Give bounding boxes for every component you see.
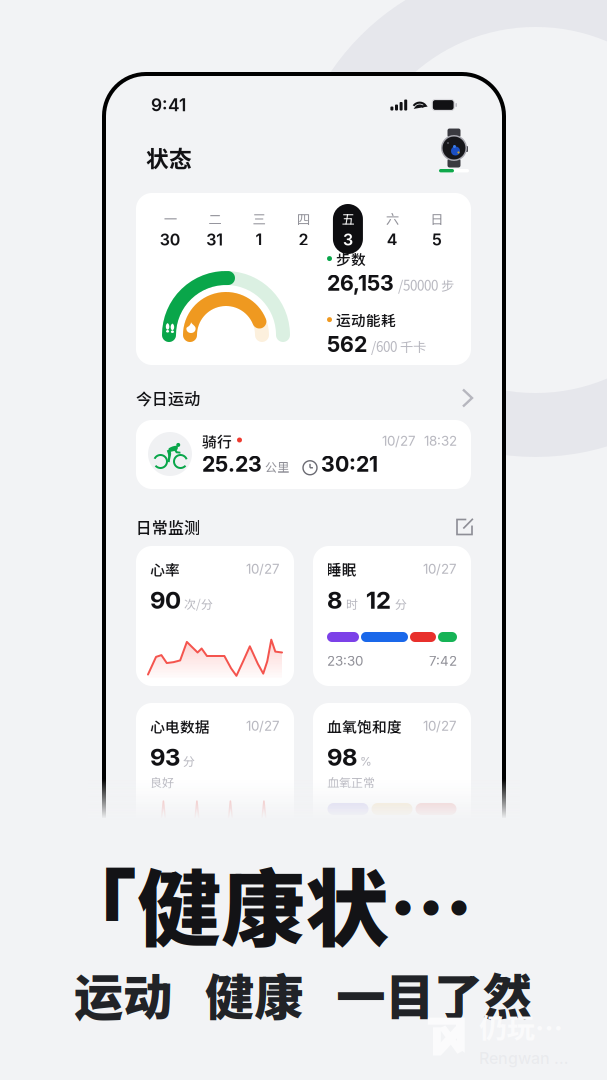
staticText: 30:21 — [321, 451, 378, 477]
button[interactable]: 睡眠 — [313, 546, 471, 686]
staticText: 「健康状态」 — [53, 842, 553, 938]
staticText: 10/27 — [246, 718, 280, 734]
staticText: /600 千卡 — [371, 336, 426, 356]
staticText: 4 — [387, 230, 398, 249]
staticText: 8 — [327, 585, 342, 614]
staticText: 状态 — [146, 141, 192, 173]
staticText: 心率 — [150, 558, 180, 580]
staticText: 93 — [150, 742, 180, 771]
button[interactable]: 一 — [148, 204, 192, 254]
staticText: 25.23 — [202, 451, 262, 477]
staticText: 5 — [432, 230, 442, 249]
button[interactable]: 今日运动 — [104, 379, 504, 417]
staticText: 1 — [256, 230, 263, 249]
staticText: 分 — [183, 752, 195, 769]
button[interactable]: 日 — [415, 204, 459, 254]
staticText: 心电数据 — [150, 715, 210, 737]
button[interactable]: 我的设备 — [437, 130, 471, 184]
staticText: 五 — [341, 209, 354, 228]
button[interactable]: 五 — [326, 204, 370, 254]
staticText: 步数 — [336, 248, 366, 269]
button[interactable]: 骑行 — [136, 420, 471, 489]
staticText: /50000 步 — [398, 275, 454, 295]
staticText: 98 — [327, 742, 357, 771]
staticText: 四 — [297, 209, 310, 228]
staticText: 仍玩游戏 — [479, 1006, 578, 1046]
staticText: 31 — [206, 230, 223, 249]
staticText: % — [360, 754, 372, 769]
staticText: 血氧饱和度 — [327, 715, 402, 737]
staticText: 90 — [150, 585, 181, 614]
staticText: 分 — [395, 595, 407, 612]
staticText: 26,153 — [327, 270, 394, 296]
button[interactable]: 三 — [237, 204, 281, 254]
staticText: 时 — [346, 595, 358, 612]
staticText: 六 — [386, 209, 399, 228]
staticText: 30 — [160, 230, 181, 249]
staticText: 23:30 — [327, 653, 363, 669]
staticText: 今日运动 — [136, 386, 200, 410]
button[interactable]: 日常监测 — [104, 508, 504, 546]
staticText: 10/27 — [246, 561, 280, 577]
staticText: 二 — [208, 209, 221, 228]
staticText: 睡眠 — [327, 558, 357, 580]
staticText: 10/27 — [423, 718, 457, 734]
staticText: 运动能耗 — [336, 309, 396, 330]
staticText: 12 — [366, 585, 391, 614]
button[interactable]: 心电数据 — [136, 703, 294, 843]
staticText: 10/27 — [423, 561, 457, 577]
staticText: 10/27 18:32 — [382, 433, 457, 449]
staticText: 7:42 — [429, 653, 457, 669]
staticText: 9:41 — [151, 94, 186, 115]
button[interactable]: 六 — [370, 204, 414, 254]
staticText: 骑行 — [202, 430, 232, 452]
button[interactable]: 血氧饱和度 — [313, 703, 471, 843]
staticText: 血氧正常 — [327, 773, 375, 791]
button[interactable]: 二 — [192, 204, 237, 254]
staticText: 公里 — [265, 458, 289, 475]
button[interactable]: 心率 — [136, 546, 294, 686]
button[interactable]: 四 — [281, 204, 326, 254]
staticText: 一 — [164, 209, 177, 228]
staticText: 三 — [253, 209, 266, 228]
staticText: 次/分 — [184, 595, 213, 612]
staticText: 2 — [298, 230, 308, 249]
staticText: 运动 健康 一目了然 — [74, 958, 532, 1022]
staticText: 日 — [430, 209, 443, 228]
staticText: 3 — [343, 230, 353, 249]
staticText: 562 — [327, 331, 367, 357]
staticText: 日常监测 — [136, 515, 200, 539]
staticText: 良好 — [150, 773, 174, 791]
